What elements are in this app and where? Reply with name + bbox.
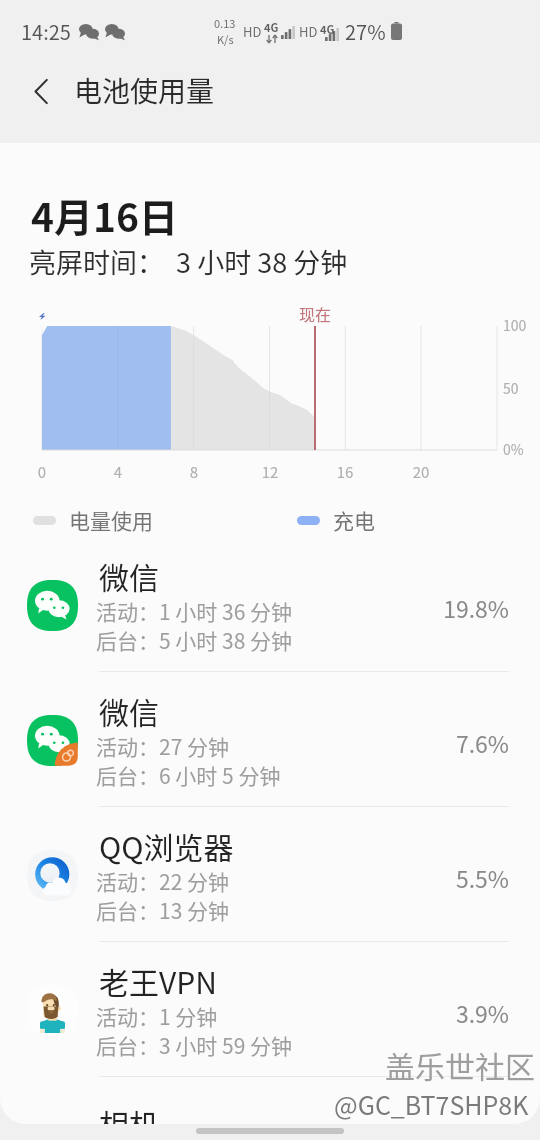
staticText: 活动：1 小时 36 分钟: [96, 596, 293, 626]
staticText: 后台：13 分钟: [96, 895, 230, 925]
button[interactable]: 相机: [0, 1100, 540, 1124]
staticText: 亮屏时间： 3 小时 38 分钟: [29, 242, 348, 281]
staticText: 5.5%: [0, 861, 509, 894]
staticText: 16: [329, 461, 361, 483]
staticText: 0: [26, 461, 58, 483]
staticText: 后台：5 小时 38 分钟: [96, 625, 293, 655]
staticText: 8: [178, 461, 210, 483]
staticText: 活动：27 分钟: [96, 731, 230, 761]
staticText: 微信: [99, 689, 159, 732]
staticText: 27%: [345, 17, 386, 46]
staticText: 20: [405, 461, 437, 483]
staticText: 4G: [264, 19, 279, 35]
staticText: K/s: [217, 31, 234, 47]
staticText: QQ浏览器: [99, 824, 234, 867]
staticText: 老王VPN: [99, 959, 217, 1002]
button[interactable]: 老王VPN: [0, 950, 540, 1085]
staticText: 3.9%: [0, 996, 509, 1029]
button[interactable]: Back: [18, 67, 66, 115]
staticText: 50: [503, 378, 519, 398]
staticText: 充电: [333, 505, 375, 535]
staticText: 盖乐世社区: [385, 1043, 535, 1086]
staticText: 后台：3 小时 59 分钟: [96, 1030, 293, 1060]
staticText: 电池使用量: [74, 70, 215, 111]
staticText: 0%: [503, 439, 524, 459]
staticText: 19.8%: [0, 591, 509, 624]
staticText: HD: [243, 22, 262, 41]
staticText: @GC_BT7SHP8K: [334, 1086, 529, 1122]
staticText: 4: [102, 461, 134, 483]
staticText: 微信: [99, 554, 159, 597]
staticText: 活动：22 分钟: [96, 866, 230, 896]
staticText: 活动：1 分钟: [96, 1001, 218, 1031]
staticText: HD: [299, 22, 318, 41]
staticText: 100: [503, 315, 527, 335]
staticText: 相机: [99, 1101, 159, 1124]
staticText: 现在: [299, 302, 332, 325]
staticText: 电量使用: [69, 505, 153, 535]
button[interactable]: 微信: [0, 545, 540, 680]
button[interactable]: 微信: [0, 680, 540, 815]
staticText: 0.13: [214, 15, 236, 31]
staticText: 12: [254, 461, 286, 483]
staticText: 4G: [320, 21, 335, 37]
staticText: 7.6%: [0, 726, 509, 759]
staticText: 后台：6 小时 5 分钟: [96, 760, 281, 790]
button[interactable]: QQ浏览器: [0, 815, 540, 950]
staticText: 14:25: [21, 17, 71, 46]
staticText: 4月16日: [31, 187, 179, 243]
